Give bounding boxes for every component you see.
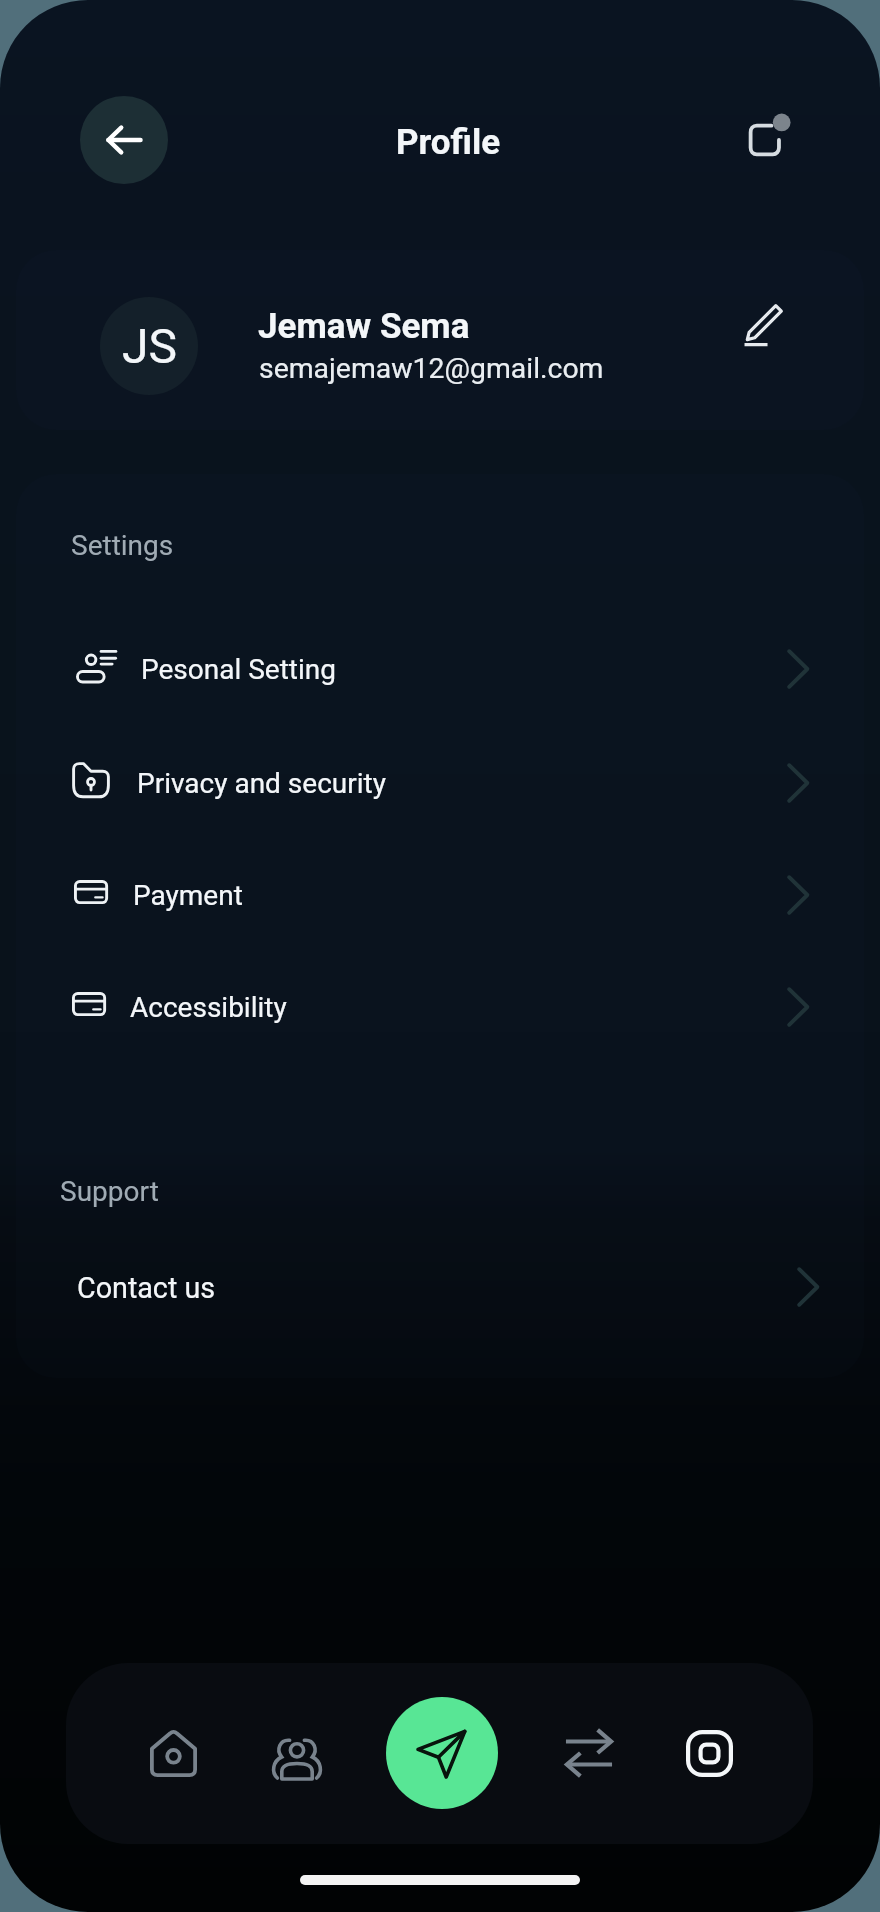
staticText: Settings (71, 529, 174, 562)
staticText: JS (122, 318, 177, 374)
button[interactable]: Edit profile (722, 284, 802, 364)
staticText: Profile (396, 122, 501, 163)
button[interactable]: Notifications (726, 100, 806, 180)
button[interactable]: Pesonal Setting (20, 622, 860, 734)
staticText: Jemaw Sema (258, 306, 470, 347)
button[interactable]: Privacy and security (20, 736, 860, 848)
button[interactable]: Accessibility (20, 960, 860, 1072)
button[interactable]: Payment (20, 848, 860, 960)
staticText: Payment (133, 879, 243, 912)
staticText: Privacy and security (137, 767, 386, 800)
button[interactable]: Contact us (20, 1240, 860, 1352)
button[interactable]: Transfers (539, 1703, 639, 1803)
staticText: Accessibility (130, 991, 287, 1024)
staticText: semajemaw12@gmail.com (259, 352, 604, 385)
button[interactable]: Send (386, 1697, 498, 1809)
button[interactable]: Profile (659, 1703, 759, 1803)
staticText: Contact us (77, 1271, 216, 1305)
staticText: Support (60, 1175, 159, 1208)
button[interactable]: Contacts (247, 1707, 347, 1807)
staticText: Pesonal Setting (141, 653, 336, 686)
button[interactable]: Back (80, 96, 168, 184)
button[interactable]: Home (123, 1703, 223, 1803)
